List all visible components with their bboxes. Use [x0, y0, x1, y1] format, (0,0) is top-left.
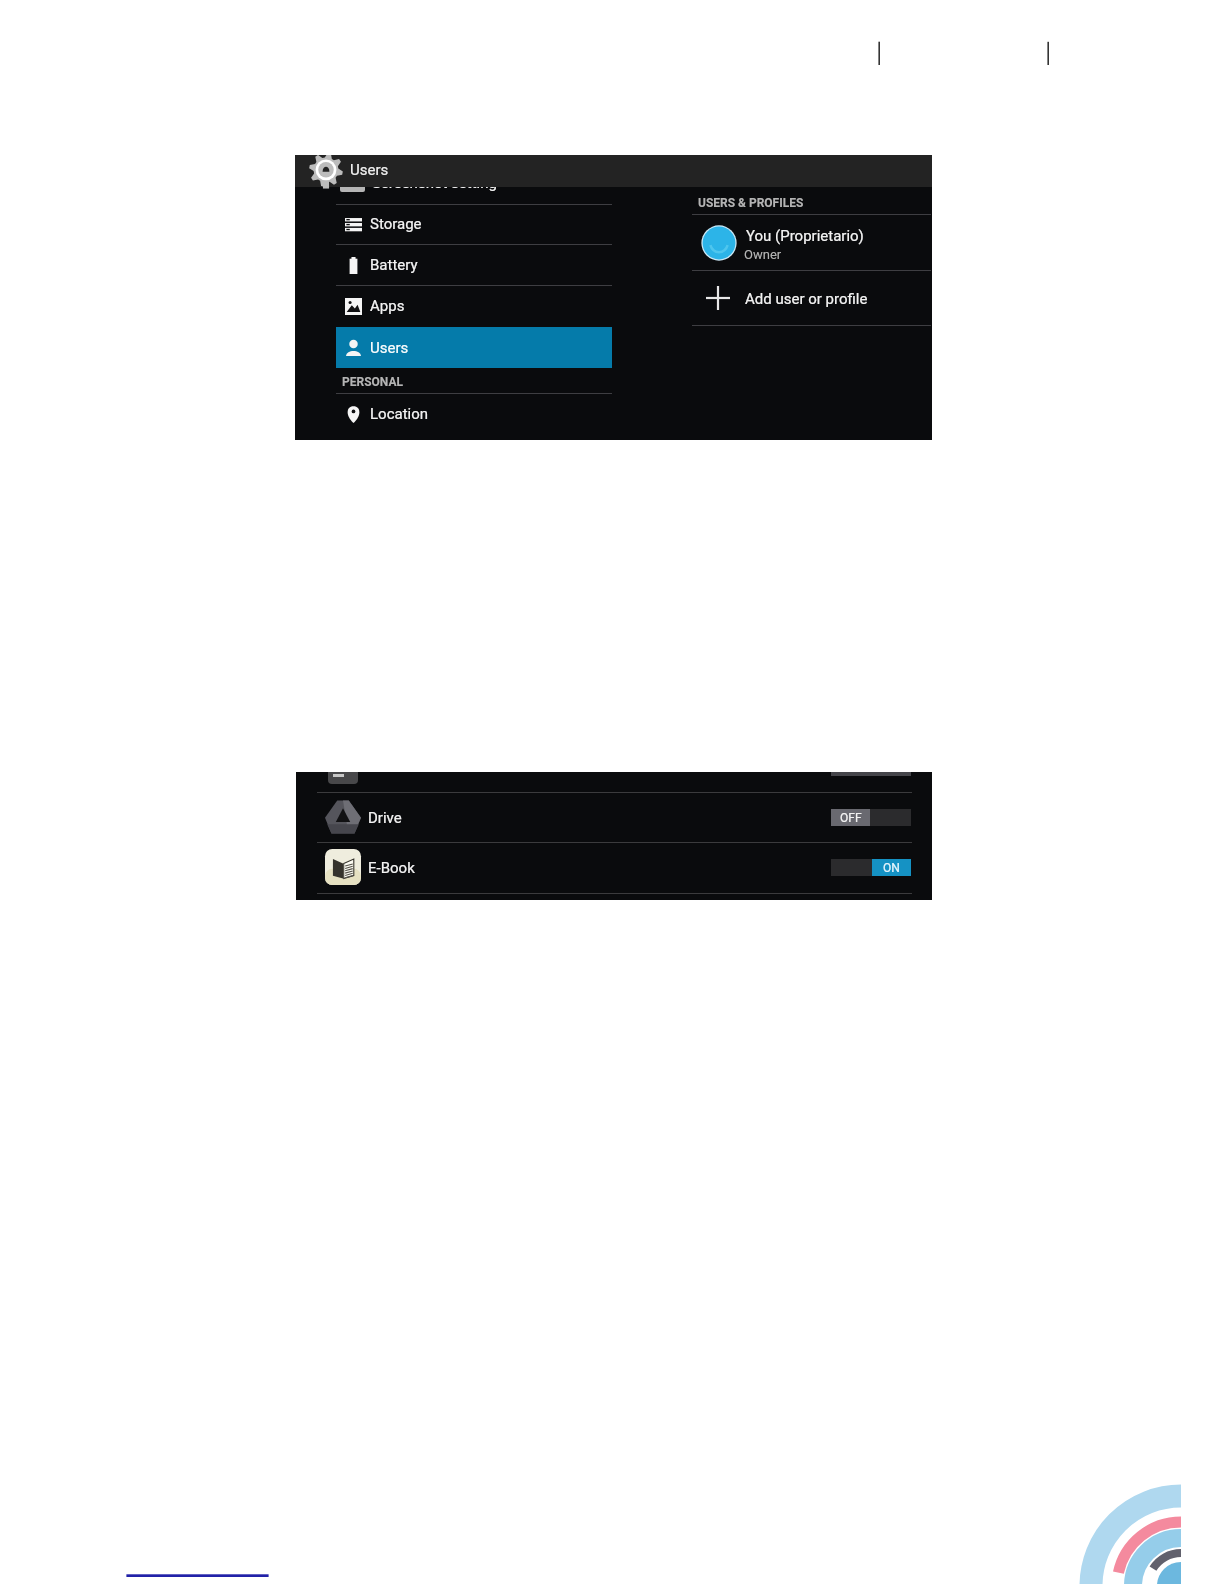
- button[interactable]: Users: [295, 155, 932, 187]
- staticText: Battery: [370, 256, 418, 274]
- staticText: PERSONAL: [342, 375, 403, 389]
- button[interactable]: Toggle off: [831, 809, 911, 826]
- staticText: USERS & PROFILES: [698, 196, 804, 210]
- button[interactable]: You (Proprietario): [692, 215, 931, 270]
- button[interactable]: Location: [336, 394, 612, 434]
- button[interactable]: Battery: [336, 245, 612, 285]
- button[interactable]: Toggle on: [831, 859, 911, 876]
- button[interactable]: Storage: [336, 204, 612, 244]
- button[interactable]: Screenshot setting: [336, 171, 612, 195]
- staticText: Owner: [744, 247, 782, 262]
- staticText: Location: [370, 405, 429, 423]
- staticText: OFF: [840, 811, 862, 825]
- button[interactable]: Apps: [336, 286, 612, 326]
- button[interactable]: Add user or profile: [692, 271, 931, 325]
- staticText: Screenshot setting: [372, 174, 497, 192]
- button[interactable]: E-Book: [296, 843, 932, 893]
- staticText: Storage: [370, 215, 422, 233]
- staticText: Users: [350, 161, 389, 179]
- staticText: You (Proprietario): [746, 227, 864, 245]
- staticText: Apps: [370, 297, 405, 315]
- staticText: E-Book: [368, 859, 415, 877]
- staticText: ON: [883, 861, 900, 875]
- button[interactable]: Users: [336, 327, 612, 368]
- staticText: Users: [370, 339, 409, 357]
- staticText: Add user or profile: [745, 290, 868, 308]
- button[interactable]: Drive: [296, 793, 932, 843]
- staticText: Drive: [368, 809, 402, 827]
- other: Add user or profile: [706, 286, 730, 310]
